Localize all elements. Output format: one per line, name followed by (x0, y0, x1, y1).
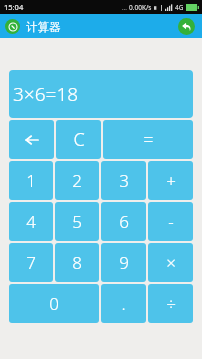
button[interactable]: 4 (9, 202, 53, 241)
button[interactable]: + (148, 161, 193, 200)
staticText: 3 (119, 169, 129, 192)
staticText: C (73, 127, 85, 152)
staticText: . (121, 292, 126, 315)
button[interactable]: 2 (55, 161, 99, 200)
button[interactable]: 0 (9, 284, 99, 323)
button[interactable]: 1 (9, 161, 53, 200)
staticText: + (166, 169, 176, 192)
button[interactable]: 5 (55, 202, 99, 241)
staticText: 4G (175, 3, 184, 12)
staticText: 7 (26, 251, 36, 274)
staticText: 2 (72, 169, 82, 192)
button[interactable]: Back (178, 18, 195, 35)
button[interactable]: 6 (101, 202, 146, 241)
button[interactable]: 9 (101, 243, 146, 282)
staticText: 4 (26, 210, 36, 233)
staticText: 计算器 (26, 20, 61, 34)
staticText: = (143, 127, 154, 152)
button[interactable]: C (56, 120, 101, 159)
button[interactable]: 7 (9, 243, 53, 282)
button[interactable]: ÷ (148, 284, 193, 323)
button[interactable]: App icon (5, 19, 20, 34)
button[interactable]: . (101, 284, 146, 323)
button[interactable]: 8 (55, 243, 99, 282)
staticText: 8 (72, 251, 82, 274)
staticText: 1 (26, 169, 36, 192)
button[interactable]: 3 (101, 161, 146, 200)
staticText: 9 (119, 251, 129, 274)
staticText: × (166, 251, 176, 274)
button[interactable]: × (148, 243, 193, 282)
button[interactable]: Backspace (9, 120, 54, 159)
staticText: 15:04 (4, 2, 24, 12)
button[interactable]: - (148, 202, 193, 241)
staticText: - (168, 210, 174, 233)
staticText: ÷ (166, 292, 176, 315)
button[interactable]: = (103, 120, 193, 159)
staticText: 3×6=18 (13, 81, 79, 107)
staticText: 6 (119, 210, 129, 233)
staticText: 0 (49, 292, 59, 315)
staticText: 0.00K/s (129, 3, 152, 12)
staticText: ... (122, 4, 127, 12)
staticText: 5 (72, 210, 82, 233)
